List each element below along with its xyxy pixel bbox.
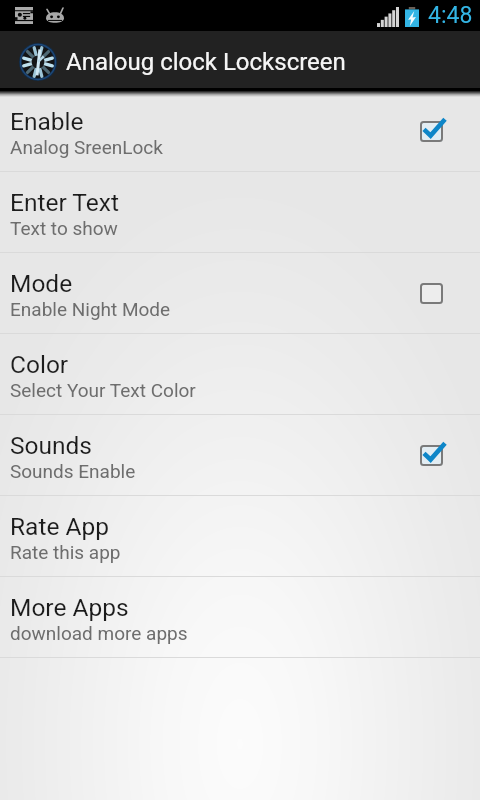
staticText: Enable Night Mode [10,298,171,320]
staticText: Select Your Text Color [10,379,196,401]
staticText: Color [10,350,69,379]
button[interactable]: Sounds [0,415,480,495]
staticText: Mode [10,269,73,298]
staticText: Rate this app [10,541,121,563]
button[interactable]: Rate App [0,496,480,576]
staticText: Sounds Enable [10,460,136,482]
staticText: Enter Text [10,188,119,217]
staticText: download more apps [10,622,188,644]
staticText: Enable [10,107,84,136]
button[interactable]: Enable [0,91,480,171]
staticText: Sounds [10,431,93,460]
staticText: More Apps [10,593,129,622]
button[interactable]: Color [0,334,480,414]
button[interactable]: Mode checkbox [412,263,460,323]
button[interactable]: More Apps [0,577,480,657]
button[interactable]: Sounds checkbox [412,425,460,485]
button[interactable]: Enter Text [0,172,480,252]
staticText: Analoug clock Lockscreen [66,48,346,76]
staticText: Rate App [10,512,110,541]
staticText: Text to show [10,217,118,239]
button[interactable]: Enable checkbox [412,101,460,161]
staticText: Analog SreenLock [10,136,163,158]
staticText: 4:48 [428,2,473,29]
button[interactable]: Mode [0,253,480,333]
